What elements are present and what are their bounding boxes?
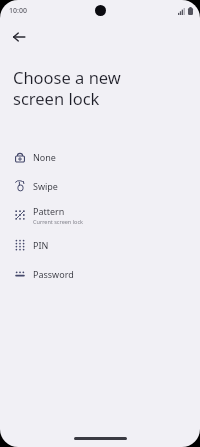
staticText: PIN xyxy=(33,239,49,251)
button[interactable]: Password xyxy=(0,259,200,288)
staticText: Password xyxy=(33,268,74,280)
staticText: Current screen lock xyxy=(33,218,84,225)
staticText: Swipe xyxy=(33,180,58,192)
button[interactable]: PIN xyxy=(0,230,200,259)
staticText: Pattern xyxy=(33,205,65,217)
staticText: Choose a new screen lock xyxy=(13,66,121,110)
button[interactable]: Pattern xyxy=(0,200,200,230)
button[interactable]: Swipe xyxy=(0,171,200,200)
staticText: 10:00 xyxy=(9,6,27,16)
button[interactable]: Back xyxy=(4,22,34,52)
button[interactable]: None xyxy=(0,142,200,171)
staticText: None xyxy=(33,151,56,163)
